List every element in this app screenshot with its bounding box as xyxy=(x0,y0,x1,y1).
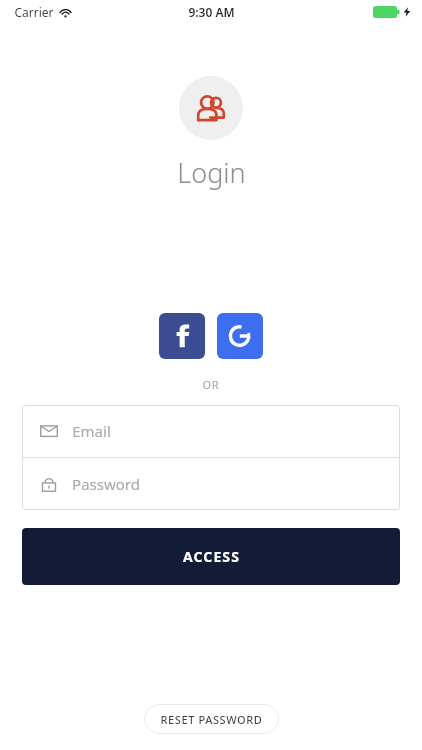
button[interactable]: Sign in with Facebook xyxy=(159,313,205,359)
staticText: 9:30 AM xyxy=(188,4,235,20)
button[interactable]: Sign in with Google xyxy=(217,313,263,359)
button[interactable]: ACCESS xyxy=(22,528,400,585)
staticText: RESET PASSWORD xyxy=(160,712,263,727)
button[interactable]: Password xyxy=(22,458,400,510)
staticText: ACCESS xyxy=(183,547,240,566)
button[interactable]: RESET PASSWORD xyxy=(144,704,279,734)
button[interactable]: Email xyxy=(22,405,400,457)
staticText: Email xyxy=(72,421,111,441)
staticText: OR xyxy=(202,377,220,392)
staticText: Password xyxy=(72,474,140,494)
staticText: Carrier xyxy=(14,4,54,20)
staticText: Login xyxy=(177,154,246,191)
